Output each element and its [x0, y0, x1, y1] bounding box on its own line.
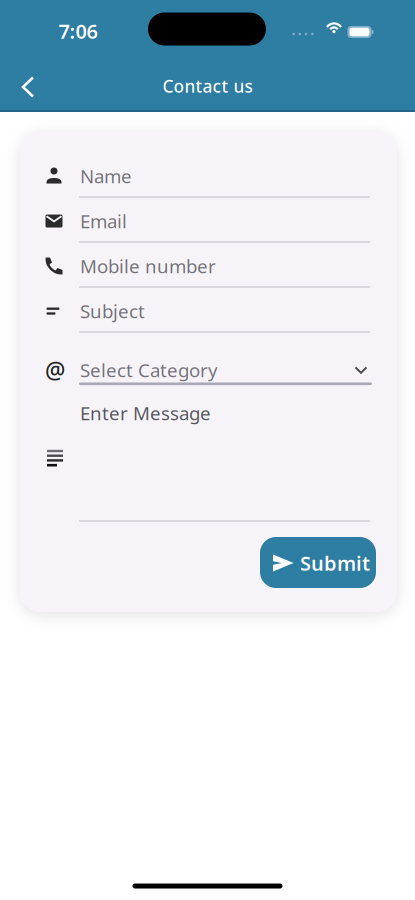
button[interactable]: Enter Message: [20, 397, 397, 527]
button[interactable]: Mobile number: [20, 248, 397, 293]
staticText: Subject: [80, 299, 145, 323]
staticText: Select Category: [80, 358, 218, 382]
button[interactable]: Submit: [260, 537, 376, 588]
staticText: 7:06: [58, 18, 97, 44]
staticText: Mobile number: [80, 254, 216, 278]
button[interactable]: Back: [6, 65, 50, 109]
button[interactable]: Email: [20, 203, 397, 248]
staticText: Contact us: [162, 74, 252, 97]
staticText: Name: [80, 164, 132, 188]
button[interactable]: Subject: [20, 293, 397, 338]
staticText: Email: [80, 209, 127, 233]
button[interactable]: Name: [20, 158, 397, 203]
button[interactable]: Select Category: [20, 351, 397, 391]
staticText: Enter Message: [80, 401, 211, 425]
staticText: Submit: [300, 550, 370, 576]
staticText: @: [45, 355, 65, 385]
